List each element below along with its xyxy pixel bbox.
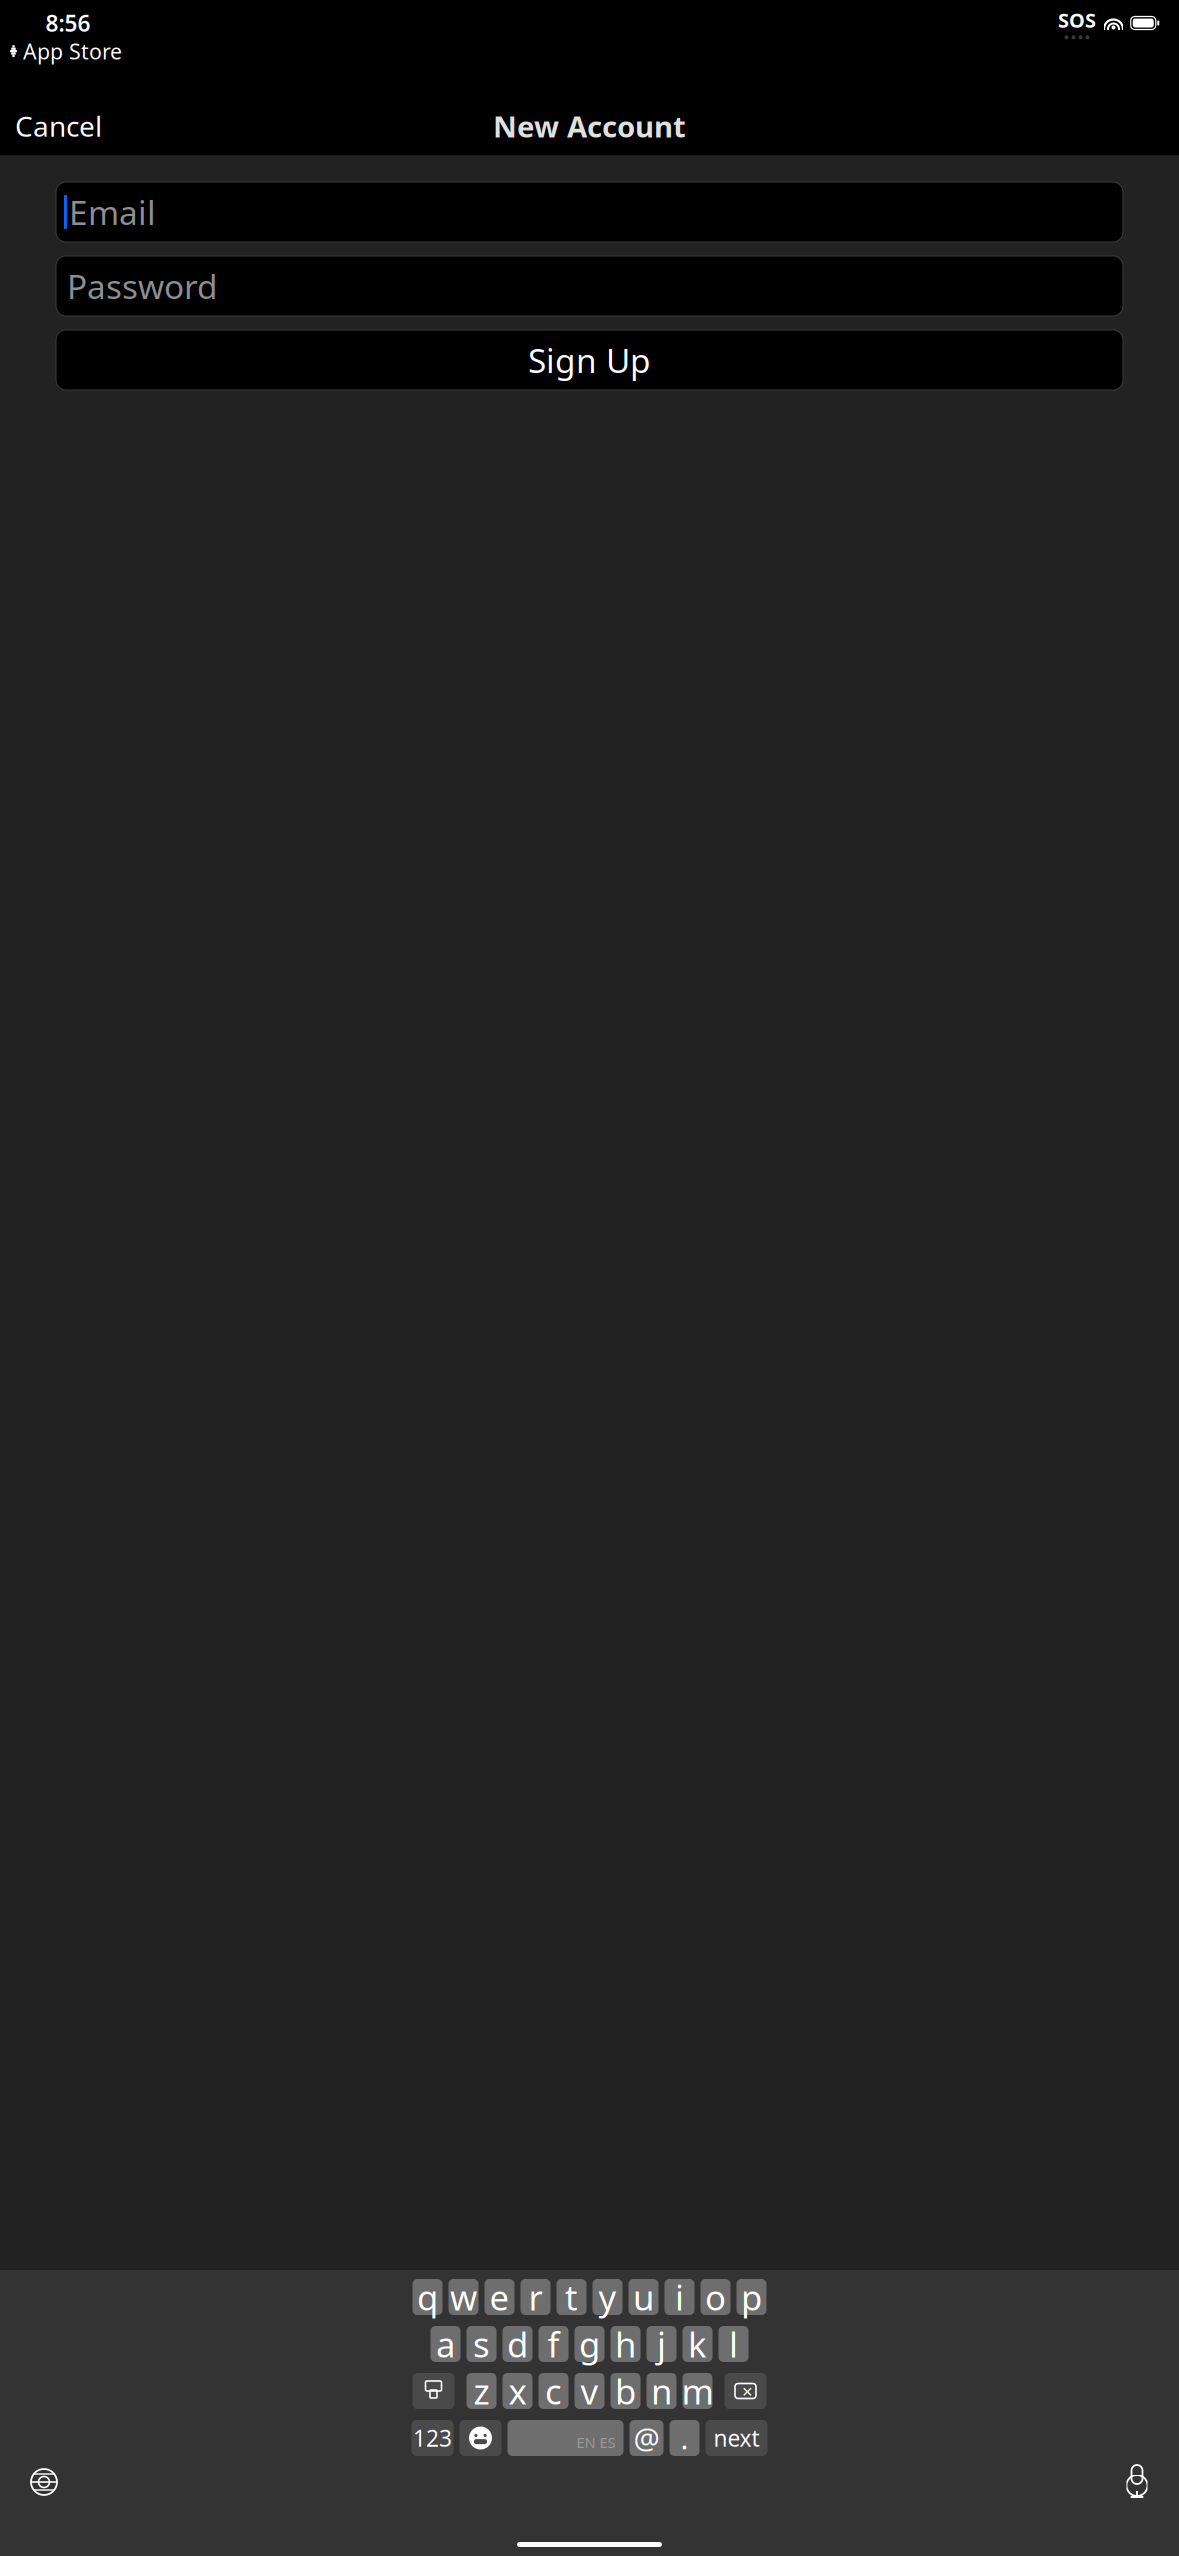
staticText: @ [633,2418,659,2457]
staticText: EN ES [576,2432,615,2452]
button[interactable]: k [682,2326,712,2362]
staticText: w [450,2274,477,2320]
button[interactable]: Cancel [11,97,106,155]
button[interactable]: Password [56,256,1123,316]
staticText: Sign Up [528,338,651,382]
staticText: c [545,2368,562,2414]
staticText: Password [67,264,218,308]
staticText: g [579,2321,600,2367]
button[interactable]: j [646,2326,676,2362]
staticText: n [651,2368,672,2414]
button[interactable]: l [718,2326,748,2362]
button[interactable]: Emoji [459,2420,501,2456]
button[interactable]: Dictate [1122,2465,1152,2499]
button[interactable]: c [538,2373,568,2409]
staticText: p [741,2274,762,2320]
button[interactable]: a [430,2326,460,2362]
staticText: x [508,2368,526,2414]
staticText: 123 [413,2423,452,2453]
button[interactable]: m [682,2373,712,2409]
button[interactable]: Next keyboard [27,2465,61,2499]
staticText: . [680,2418,688,2457]
staticText: a [436,2321,455,2367]
staticText: k [688,2321,707,2367]
button[interactable]: n [646,2373,676,2409]
staticText: l [729,2321,738,2367]
staticText: App Store [23,37,122,65]
staticText: z [473,2368,489,2414]
staticText: y [598,2274,616,2320]
button[interactable]: b [610,2373,640,2409]
staticText: Email [69,190,156,234]
staticText: s [473,2321,490,2367]
staticText: SOS [1058,7,1096,33]
button[interactable]: u [628,2279,658,2315]
button[interactable]: s [466,2326,496,2362]
button[interactable]: w [448,2279,478,2315]
button[interactable]: . [669,2420,699,2456]
button[interactable]: x [502,2373,532,2409]
button[interactable]: v [574,2373,604,2409]
staticText: i [675,2274,684,2320]
staticText: h [615,2321,636,2367]
button[interactable]: Sign Up [56,330,1123,390]
button[interactable]: @ [629,2420,663,2456]
button[interactable]: Space [507,2420,623,2456]
button[interactable]: Delete [724,2373,766,2409]
staticText: t [565,2274,578,2320]
button[interactable]: q [412,2279,442,2315]
staticText: o [705,2274,726,2320]
button[interactable]: Shift [412,2373,454,2409]
staticText: New Account [493,106,686,145]
staticText: e [489,2274,509,2320]
button[interactable]: g [574,2326,604,2362]
staticText: f [547,2321,559,2367]
button[interactable]: y [592,2279,622,2315]
button[interactable]: e [484,2279,514,2315]
button[interactable]: i [664,2279,694,2315]
staticText: q [417,2274,438,2320]
staticText: d [507,2321,528,2367]
staticText: v [580,2368,598,2414]
button[interactable]: d [502,2326,532,2362]
staticText: Cancel [15,107,102,145]
button[interactable]: r [520,2279,550,2315]
button[interactable]: h [610,2326,640,2362]
staticText: 8:56 [45,8,90,38]
staticText: j [657,2321,666,2367]
staticText: b [615,2368,636,2414]
staticText: next [713,2423,759,2453]
button[interactable]: f [538,2326,568,2362]
button[interactable]: o [700,2279,730,2315]
button[interactable]: App Store [9,37,122,65]
staticText: m [681,2368,713,2414]
staticText: u [633,2274,654,2320]
staticText: × [742,2379,753,2403]
button[interactable]: Email [56,182,1123,242]
button[interactable]: next [705,2420,767,2456]
button[interactable]: 123 [411,2420,453,2456]
button[interactable]: p [736,2279,766,2315]
staticText: r [528,2274,542,2320]
button[interactable]: t [556,2279,586,2315]
button[interactable]: z [466,2373,496,2409]
